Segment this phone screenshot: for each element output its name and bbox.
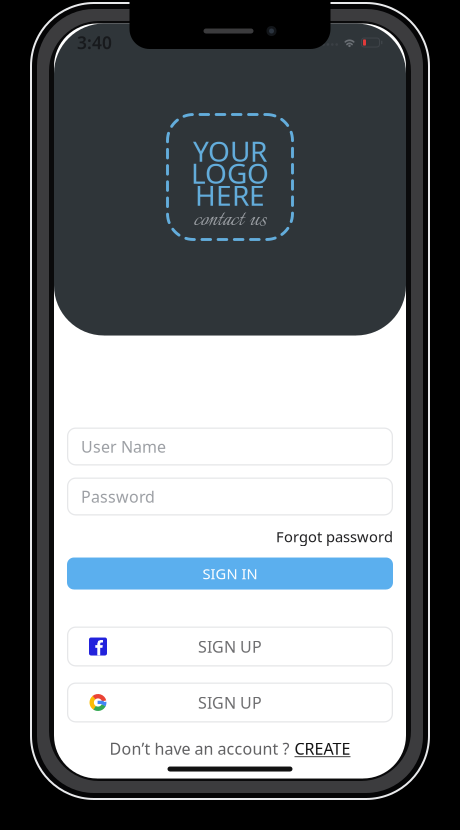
staticText: contact us (194, 202, 266, 237)
staticText: SIGN UP (198, 692, 262, 713)
button[interactable]: CREATE (294, 738, 350, 759)
staticText: User Name (81, 436, 166, 457)
staticText: CREATE (294, 738, 350, 759)
button[interactable]: Forgot password (67, 527, 393, 545)
staticText: LOGO (191, 154, 269, 192)
staticText: HERE (195, 176, 265, 214)
button[interactable]: SIGN UP (67, 682, 393, 722)
staticText: 3:40 (77, 31, 112, 54)
staticText: Password (81, 486, 155, 507)
button[interactable]: SIGN UP (67, 626, 393, 666)
button[interactable]: Password (67, 477, 393, 515)
staticText: YOUR (193, 132, 267, 170)
staticText: SIGN UP (198, 636, 262, 657)
button[interactable]: SIGN IN (67, 557, 393, 589)
staticText: Don’t have an account ? (109, 738, 289, 759)
button[interactable]: User Name (67, 427, 393, 465)
staticText: Forgot password (276, 527, 393, 546)
staticText: SIGN IN (202, 564, 257, 583)
